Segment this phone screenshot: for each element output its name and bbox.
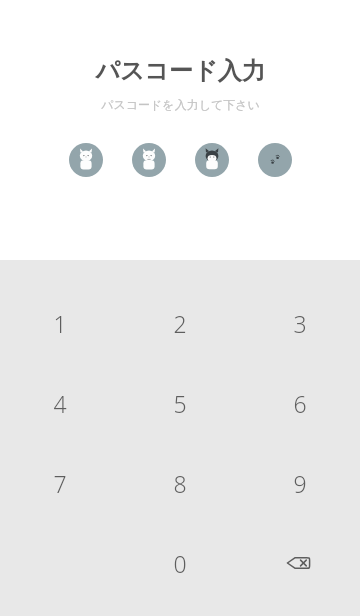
button[interactable]: 0 — [120, 523, 240, 603]
staticText: パスコードを入力して下さい — [101, 97, 260, 112]
button[interactable]: 3 — [240, 283, 360, 363]
staticText: 5 — [173, 388, 187, 419]
staticText: 9 — [293, 468, 307, 499]
staticText: 8 — [173, 468, 187, 499]
button[interactable]: 1 — [0, 283, 120, 363]
staticText: 6 — [293, 388, 307, 419]
staticText: パスコード入力 — [95, 56, 266, 86]
button[interactable]: 2 — [120, 283, 240, 363]
staticText: 7 — [53, 468, 67, 499]
staticText: 0 — [173, 548, 187, 579]
staticText: 1 — [53, 308, 67, 339]
staticText: 3 — [293, 308, 307, 339]
button[interactable]: 8 — [120, 443, 240, 523]
button[interactable]: 6 — [240, 363, 360, 443]
button[interactable]: 9 — [240, 443, 360, 523]
button[interactable]: 4 — [0, 363, 120, 443]
staticText: 4 — [53, 388, 67, 419]
button[interactable]: 5 — [120, 363, 240, 443]
staticText: 2 — [173, 308, 187, 339]
button[interactable]: 7 — [0, 443, 120, 523]
button[interactable]: Delete — [240, 523, 360, 603]
